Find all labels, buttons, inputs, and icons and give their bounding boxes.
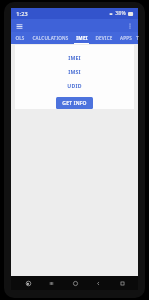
button[interactable]: Recent apps <box>44 276 58 290</box>
staticText: IMEI <box>76 35 88 41</box>
staticText: IMSI <box>68 68 81 75</box>
staticText: CALCULATIONS <box>32 35 69 41</box>
button[interactable]: More options <box>125 21 135 31</box>
button[interactable]: T <box>136 32 138 44</box>
button[interactable]: CALCULATIONS <box>29 32 71 44</box>
button[interactable]: DEVICE <box>92 32 116 44</box>
button[interactable]: IMSI <box>15 68 134 75</box>
staticText: IMEI <box>68 54 81 61</box>
button[interactable]: UDID <box>15 82 134 89</box>
staticText: DEVICE <box>95 35 113 41</box>
button[interactable]: Home <box>68 276 82 290</box>
staticText: GET INFO <box>62 100 87 106</box>
button[interactable]: Screenshot <box>115 276 129 290</box>
button[interactable]: Assistant <box>21 276 35 290</box>
staticText: T <box>136 35 138 41</box>
button[interactable]: GET INFO <box>56 97 93 109</box>
button[interactable]: OLS <box>11 32 29 44</box>
staticText: 1:23 <box>16 10 28 17</box>
button[interactable]: Back <box>91 276 105 290</box>
button[interactable]: APPS <box>116 32 136 44</box>
button[interactable]: Open navigation drawer <box>14 21 24 31</box>
staticText: APPS <box>120 35 132 41</box>
staticText: OLS <box>15 35 25 41</box>
staticText: UDID <box>67 82 82 89</box>
button[interactable]: IMEI <box>71 32 92 44</box>
button[interactable]: IMEI <box>15 54 134 61</box>
staticText: 38% <box>115 10 126 17</box>
